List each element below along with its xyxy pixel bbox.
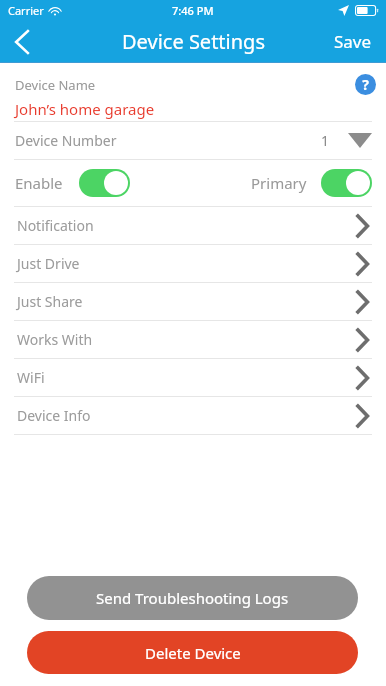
staticText: Delete Device bbox=[145, 643, 241, 663]
button[interactable]: Help bbox=[355, 74, 376, 95]
staticText: Works With bbox=[17, 330, 93, 349]
staticText: WiFi bbox=[17, 368, 45, 387]
button[interactable]: WiFi bbox=[0, 359, 386, 396]
button[interactable]: Works With bbox=[0, 321, 386, 358]
staticText: Enable bbox=[15, 173, 63, 193]
button[interactable]: Save bbox=[320, 21, 386, 62]
button[interactable]: Send Troubleshooting Logs bbox=[27, 576, 358, 620]
staticText: Notification bbox=[17, 216, 94, 235]
button[interactable]: Toggle bbox=[79, 169, 130, 197]
button[interactable]: Toggle bbox=[321, 169, 372, 197]
staticText: Device Info bbox=[17, 406, 91, 425]
button[interactable]: Device Info bbox=[0, 397, 386, 434]
staticText: Just Drive bbox=[17, 254, 80, 273]
staticText: Carrier bbox=[8, 3, 44, 18]
staticText: Device Settings bbox=[122, 28, 265, 55]
staticText: ? bbox=[362, 75, 369, 94]
staticText: Device Number bbox=[15, 131, 117, 150]
button[interactable]: Just Share bbox=[0, 283, 386, 320]
staticText: Just Share bbox=[17, 292, 83, 311]
staticText: Device Name bbox=[15, 76, 96, 94]
button[interactable]: Delete Device bbox=[27, 631, 358, 674]
staticText: John’s home garage bbox=[15, 99, 155, 119]
staticText: Save bbox=[334, 30, 372, 53]
staticText: Send Troubleshooting Logs bbox=[96, 588, 289, 608]
button[interactable]: Notification bbox=[0, 207, 386, 244]
button[interactable]: Device Number bbox=[0, 122, 386, 159]
button[interactable]: Back bbox=[0, 21, 44, 62]
staticText: 1 bbox=[321, 131, 330, 150]
staticText: 7:46 PM bbox=[172, 3, 214, 18]
button[interactable]: Just Drive bbox=[0, 245, 386, 282]
staticText: Primary bbox=[251, 173, 307, 193]
